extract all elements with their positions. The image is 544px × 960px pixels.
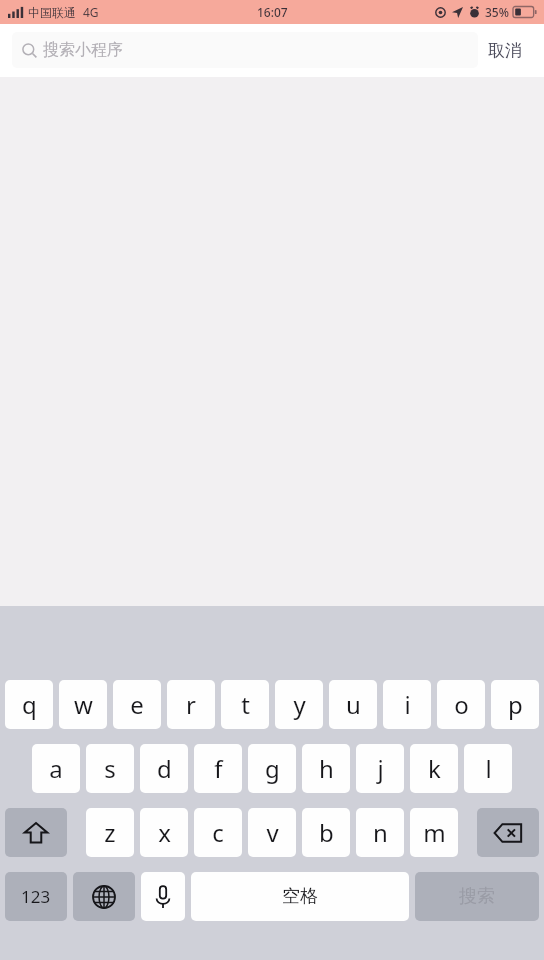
button[interactable]: Voice input	[141, 872, 185, 921]
staticText: m	[423, 816, 446, 849]
staticText: f	[214, 752, 223, 785]
staticText: l	[485, 752, 492, 785]
staticText: 中国联通	[28, 5, 76, 20]
staticText: t	[241, 688, 250, 721]
button[interactable]: j	[356, 744, 404, 793]
staticText: a	[49, 752, 63, 785]
button[interactable]: o	[437, 680, 485, 729]
staticText: 搜索	[459, 885, 495, 908]
staticText: 搜索小程序	[43, 40, 123, 60]
staticText: e	[130, 688, 144, 721]
button[interactable]: q	[5, 680, 53, 729]
button[interactable]: m	[410, 808, 458, 857]
button[interactable]: 123	[5, 872, 67, 921]
button[interactable]: 取消	[478, 34, 532, 67]
staticText: s	[104, 752, 116, 785]
button[interactable]: n	[356, 808, 404, 857]
button[interactable]: Change keyboard	[73, 872, 135, 921]
staticText: q	[22, 688, 37, 721]
button[interactable]: e	[113, 680, 161, 729]
staticText: k	[428, 752, 441, 785]
staticText: p	[508, 688, 523, 721]
button[interactable]: 空格	[191, 872, 409, 921]
button[interactable]: s	[86, 744, 134, 793]
button[interactable]: u	[329, 680, 377, 729]
button[interactable]: y	[275, 680, 323, 729]
button[interactable]: c	[194, 808, 242, 857]
staticText: o	[454, 688, 469, 721]
staticText: w	[74, 688, 93, 721]
button[interactable]: Shift	[5, 808, 67, 857]
staticText: z	[104, 816, 116, 849]
staticText: 取消	[488, 40, 522, 61]
staticText: 123	[21, 885, 51, 908]
staticText: 16:07	[257, 4, 288, 20]
staticText: v	[266, 816, 279, 849]
staticText: d	[157, 752, 172, 785]
button[interactable]: r	[167, 680, 215, 729]
button[interactable]: f	[194, 744, 242, 793]
staticText: 35%	[485, 4, 509, 20]
button[interactable]: v	[248, 808, 296, 857]
staticText: u	[346, 688, 361, 721]
button[interactable]: k	[410, 744, 458, 793]
button[interactable]: g	[248, 744, 296, 793]
staticText: j	[377, 752, 384, 785]
staticText: r	[186, 688, 196, 721]
staticText: 空格	[282, 885, 318, 908]
button[interactable]: 搜索	[415, 872, 539, 921]
button[interactable]: l	[464, 744, 512, 793]
button[interactable]: w	[59, 680, 107, 729]
button[interactable]: z	[86, 808, 134, 857]
staticText: y	[293, 688, 306, 721]
button[interactable]: p	[491, 680, 539, 729]
button[interactable]: h	[302, 744, 350, 793]
button[interactable]: d	[140, 744, 188, 793]
button[interactable]: Delete	[477, 808, 539, 857]
button[interactable]: b	[302, 808, 350, 857]
button[interactable]: a	[32, 744, 80, 793]
button[interactable]: 搜索小程序	[12, 32, 478, 68]
staticText: n	[373, 816, 388, 849]
staticText: b	[319, 816, 334, 849]
staticText: x	[158, 816, 171, 849]
staticText: h	[319, 752, 334, 785]
staticText: 4G	[83, 4, 99, 20]
staticText: g	[265, 752, 280, 785]
button[interactable]: i	[383, 680, 431, 729]
staticText: i	[404, 688, 411, 721]
staticText: c	[212, 816, 224, 849]
button[interactable]: t	[221, 680, 269, 729]
button[interactable]: x	[140, 808, 188, 857]
